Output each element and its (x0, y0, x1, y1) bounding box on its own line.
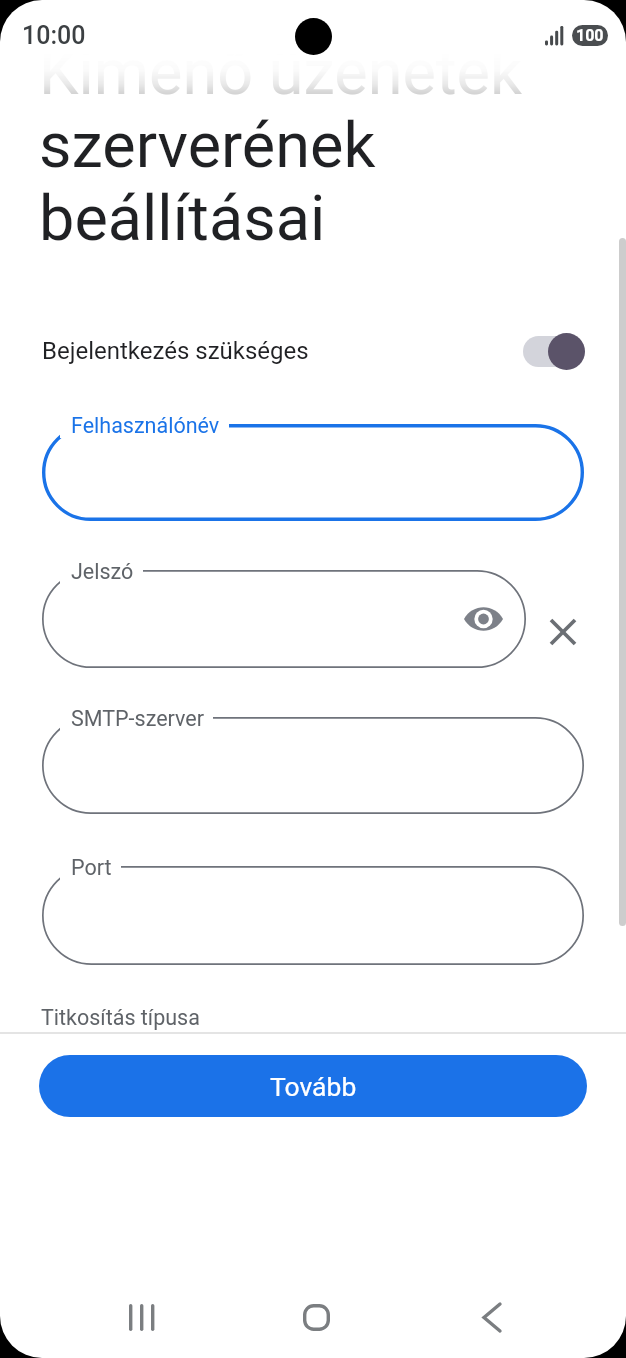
staticText: 100 (576, 26, 604, 45)
button[interactable]: Bejelentkezés szükséges (0, 312, 626, 390)
staticText: 10:00 (22, 21, 86, 50)
staticText: beállításai (39, 182, 326, 256)
staticText: Jelszó (71, 559, 134, 584)
button[interactable]: Kezdőképernyő (272, 1273, 360, 1358)
staticText: Felhasználónév (71, 413, 220, 438)
staticText: Titkosítás típusa (41, 1005, 200, 1030)
button[interactable]: Felhasználónév (42, 424, 584, 521)
staticText: SMTP-szerver (71, 706, 204, 731)
staticText: Kimenő üzenetek (39, 36, 522, 110)
button[interactable]: Port (42, 866, 584, 965)
staticText: Port (71, 855, 112, 880)
staticText: Tovább (270, 1071, 357, 1102)
button[interactable]: Legutóbbi alkalmazások (97, 1273, 185, 1358)
button[interactable]: Jelszó megjelenítése (457, 593, 509, 645)
button[interactable]: Bejelentkezés szükséges (523, 332, 585, 370)
button[interactable]: Vissza (448, 1273, 536, 1358)
button[interactable]: Törlés (535, 604, 591, 660)
staticText: szerverének (39, 109, 376, 183)
button[interactable]: Jelszó (42, 570, 526, 668)
button[interactable]: Tovább (39, 1055, 587, 1117)
button[interactable]: SMTP-szerver (42, 717, 584, 814)
staticText: Bejelentkezés szükséges (42, 337, 309, 365)
